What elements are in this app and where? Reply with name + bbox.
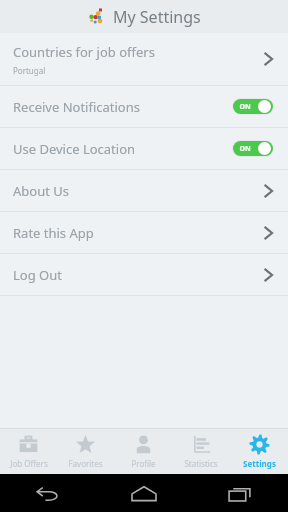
other: Open [258, 48, 278, 70]
staticText: My Settings [113, 6, 201, 28]
staticText: Settings [243, 458, 276, 469]
button[interactable]: Rate this App [0, 212, 288, 253]
button[interactable]: Toggle [232, 98, 274, 115]
staticText: ON [239, 144, 251, 154]
other: Open [258, 264, 278, 286]
other: Open [258, 222, 278, 244]
other: Home [129, 485, 159, 502]
other: Recent apps [227, 485, 253, 502]
button[interactable]: Profile [114, 429, 172, 474]
other: Open [258, 180, 278, 202]
button[interactable]: Toggle [232, 140, 274, 157]
other: Back [35, 485, 61, 501]
staticText: Portugal [13, 65, 46, 76]
staticText: Use Device Location [13, 140, 232, 158]
button[interactable]: Use Device Location [0, 128, 288, 169]
staticText: Rate this App [13, 224, 258, 242]
button[interactable]: Favorites [57, 429, 114, 474]
staticText: Countries for job offers [13, 43, 155, 61]
staticText: Statistics [184, 458, 218, 469]
staticText: ON [239, 102, 251, 112]
staticText: Log Out [13, 266, 258, 284]
button[interactable]: Countries for job offers [0, 33, 288, 85]
button[interactable]: Job Offers [0, 429, 57, 474]
button[interactable]: About Us [0, 170, 288, 211]
staticText: Receive Notifications [13, 98, 232, 116]
staticText: Job Offers [10, 458, 48, 469]
button[interactable]: Settings [230, 429, 288, 474]
button[interactable]: Statistics [172, 429, 230, 474]
staticText: About Us [13, 182, 258, 200]
staticText: Favorites [68, 458, 103, 469]
button[interactable]: Log Out [0, 254, 288, 295]
button[interactable]: Receive Notifications [0, 86, 288, 127]
staticText: Profile [131, 458, 156, 469]
